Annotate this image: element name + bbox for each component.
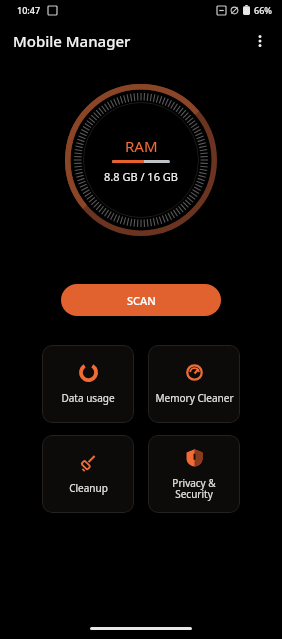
button[interactable]: Memory Cleaner	[148, 345, 240, 423]
staticText: 8.8 GB / 16 GB	[104, 169, 178, 184]
staticText: RAM	[125, 136, 158, 156]
button[interactable]: More options	[242, 23, 278, 59]
staticText: Mobile Manager	[13, 31, 131, 51]
button[interactable]: Data usage	[42, 345, 134, 423]
staticText: Data usage	[61, 391, 115, 405]
button[interactable]: Privacy & Security	[148, 435, 240, 513]
staticText: SCAN	[127, 293, 156, 308]
staticText: Privacy & Security	[172, 476, 216, 501]
staticText: 66%	[254, 4, 272, 16]
button[interactable]: Cleanup	[42, 435, 134, 513]
staticText: 10:47	[17, 4, 41, 16]
staticText: Cleanup	[69, 481, 108, 495]
staticText: Memory Cleaner	[155, 391, 234, 405]
button[interactable]: SCAN	[61, 284, 221, 316]
